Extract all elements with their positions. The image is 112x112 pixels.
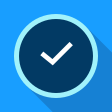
button[interactable]: Task complete [0,0,112,112]
